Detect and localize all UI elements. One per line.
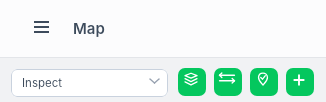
button[interactable]: Add bbox=[286, 68, 314, 96]
staticText: Map bbox=[73, 19, 105, 37]
button[interactable]: Swap bbox=[214, 68, 242, 96]
button[interactable]: Inspect bbox=[11, 69, 168, 97]
staticText: Inspect bbox=[22, 76, 63, 90]
button[interactable]: Saved places bbox=[250, 68, 278, 96]
button[interactable]: Menu bbox=[25, 13, 58, 46]
button[interactable]: Layers bbox=[178, 68, 206, 96]
